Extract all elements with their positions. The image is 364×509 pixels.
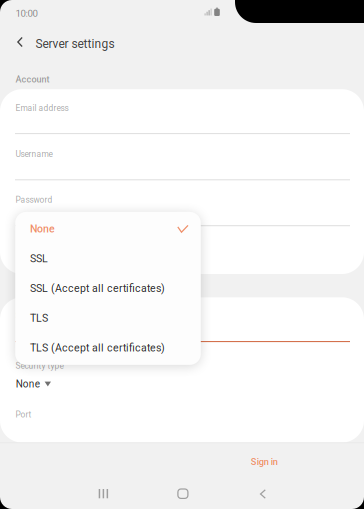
staticText: Server: [15, 311, 38, 321]
button[interactable]: Recents: [81, 471, 126, 509]
button[interactable]: TLS: [15, 303, 201, 333]
button[interactable]: Back: [242, 471, 284, 509]
staticText: Password: [15, 195, 52, 205]
staticText: None: [16, 378, 40, 390]
staticText: Sign in: [251, 456, 278, 467]
button[interactable]: None: [15, 214, 201, 244]
staticText: Account: [15, 74, 49, 85]
button[interactable]: TLS (Accept all certificates): [15, 333, 201, 363]
staticText: SSL (Accept all certificates): [30, 282, 165, 294]
staticText: Security type: [15, 361, 63, 371]
button[interactable]: SSL (Accept all certificates): [15, 273, 201, 303]
staticText: SSL: [30, 252, 48, 265]
button[interactable]: Back: [0, 30, 31, 54]
button[interactable]: Home: [160, 471, 206, 509]
button[interactable]: Sign in: [235, 448, 294, 475]
staticText: Email address: [15, 103, 68, 113]
staticText: 10:00: [15, 8, 37, 19]
staticText: Port: [15, 410, 31, 420]
staticText: Server settings: [35, 37, 114, 51]
staticText: TLS: [30, 312, 48, 324]
staticText: Username: [15, 149, 52, 159]
staticText: None: [30, 223, 55, 235]
staticText: TLS (Accept all certificates): [30, 342, 165, 354]
button[interactable]: SSL: [15, 244, 201, 273]
